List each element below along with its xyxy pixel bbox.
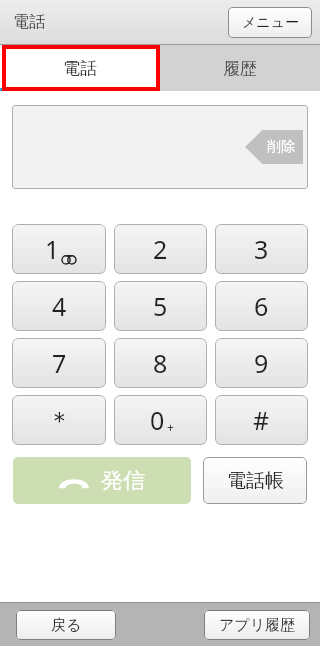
- button[interactable]: 6: [215, 281, 308, 331]
- button[interactable]: 5: [114, 281, 207, 331]
- staticText: 1: [45, 232, 60, 266]
- staticText: 8: [153, 346, 168, 380]
- staticText: 発信: [101, 467, 145, 495]
- button[interactable]: 1: [12, 224, 106, 274]
- button[interactable]: 電話帳: [203, 457, 307, 504]
- button[interactable]: 8: [114, 338, 207, 388]
- button[interactable]: 2: [114, 224, 207, 274]
- staticText: 9: [254, 346, 269, 380]
- button[interactable]: 発信: [13, 457, 191, 504]
- staticText: 電話帳: [227, 469, 284, 493]
- staticText: 4: [52, 289, 67, 323]
- button[interactable]: 3: [215, 224, 308, 274]
- staticText: 5: [153, 289, 168, 323]
- staticText: メニュー: [242, 14, 299, 32]
- button[interactable]: 0: [114, 395, 207, 445]
- staticText: 3: [254, 232, 269, 266]
- button[interactable]: メニュー: [228, 7, 312, 38]
- staticText: 削除: [267, 138, 295, 156]
- staticText: 2: [153, 232, 168, 266]
- button[interactable]: 電話: [0, 45, 160, 91]
- button[interactable]: ＊: [12, 395, 106, 445]
- button[interactable]: 削除: [12, 105, 308, 189]
- button[interactable]: 履歴: [160, 45, 320, 91]
- staticText: #: [253, 403, 270, 437]
- staticText: アプリ履歴: [219, 616, 296, 635]
- button[interactable]: 4: [12, 281, 106, 331]
- staticText: +: [167, 419, 174, 435]
- button[interactable]: 戻る: [16, 610, 116, 640]
- staticText: 0: [150, 403, 165, 437]
- button[interactable]: 削除: [245, 130, 303, 164]
- staticText: 電話: [13, 12, 45, 32]
- staticText: ＊: [47, 405, 72, 436]
- button[interactable]: 7: [12, 338, 106, 388]
- staticText: 戻る: [51, 616, 82, 635]
- staticText: 電話: [63, 58, 97, 79]
- button[interactable]: アプリ履歴: [204, 610, 310, 640]
- staticText: 履歴: [223, 58, 257, 79]
- staticText: 6: [254, 289, 269, 323]
- button[interactable]: 9: [215, 338, 308, 388]
- button[interactable]: #: [215, 395, 308, 445]
- staticText: 7: [52, 346, 67, 380]
